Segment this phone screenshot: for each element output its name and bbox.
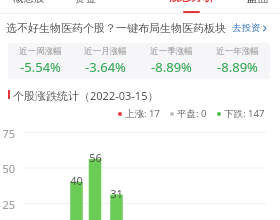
staticText: 资金 — [75, 0, 96, 5]
staticText: 近一季涨幅 — [150, 46, 193, 57]
staticText: 概念分析 — [168, 0, 214, 4]
staticText: 近一年涨幅 — [216, 46, 259, 57]
staticText: 下跌: 147 — [224, 107, 265, 120]
staticText: 近一月涨幅 — [84, 46, 127, 57]
staticText: 概念股 — [13, 0, 45, 5]
staticText: 75 — [2, 126, 15, 141]
staticText: 去投资 — [232, 22, 261, 34]
button[interactable]: 选不好生物医药个股？一键布局生物医药板块 — [0, 16, 280, 36]
button[interactable]: 概念分析 — [168, 0, 214, 5]
staticText: 近一周涨幅 — [19, 46, 62, 57]
button[interactable]: 概念股 — [8, 0, 50, 6]
staticText: 25 — [2, 197, 15, 212]
staticText: 盘面 — [246, 0, 269, 5]
staticText: 平盘: 0 — [177, 107, 207, 120]
staticText: -8.89% — [217, 58, 258, 76]
staticText: 上涨: 17 — [125, 107, 160, 120]
staticText: 选不好生物医药个股？一键布局生物医药板块 — [6, 21, 226, 35]
staticText: 31 — [110, 186, 123, 201]
staticText: -5.54% — [20, 58, 61, 76]
button[interactable]: 资金 — [69, 0, 101, 6]
staticText: 56 — [89, 150, 102, 165]
button[interactable]: 近一周涨幅 — [8, 43, 270, 79]
staticText: 40 — [70, 173, 83, 188]
staticText: -3.64% — [85, 58, 126, 76]
other: 去投资 — [261, 22, 270, 34]
staticText: 50 — [2, 161, 15, 176]
button[interactable]: 盘面 — [240, 0, 274, 6]
staticText: 个股涨跌统计（2022-03-15） — [13, 88, 159, 103]
staticText: -8.89% — [151, 58, 192, 76]
